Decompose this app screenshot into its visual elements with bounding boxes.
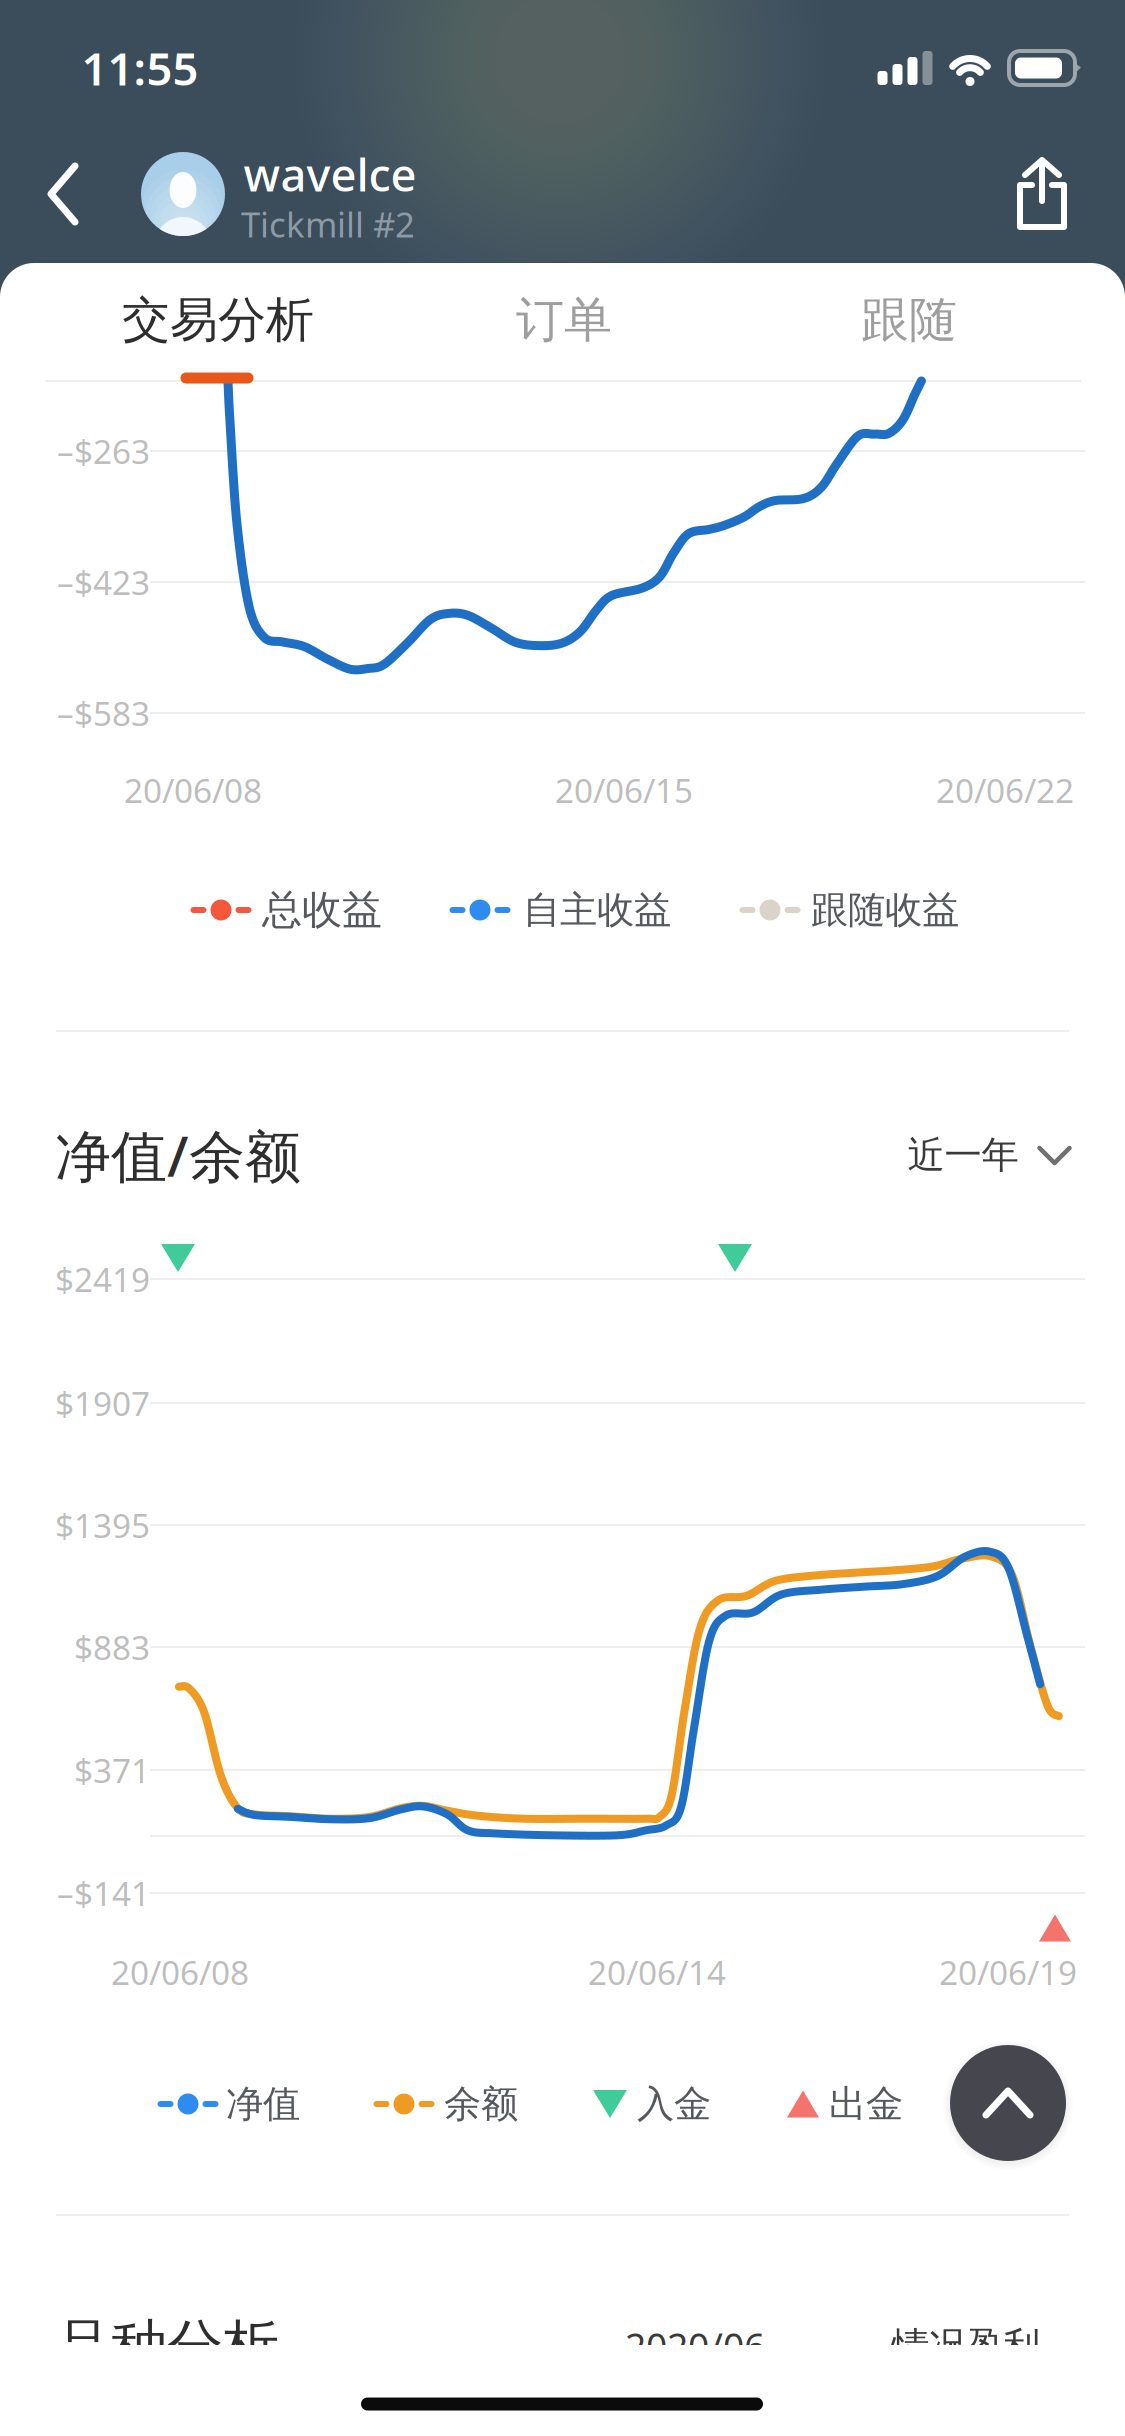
button[interactable]: 近一年 [907,1120,1072,1190]
staticText: 跟随 [861,290,957,349]
button[interactable]: 跟随 [744,261,1074,379]
staticText: 品种分析 [55,2312,279,2380]
staticText: $1395 [55,1503,150,1547]
staticText: Tickmill #2 [241,201,415,247]
button[interactable]: Scroll to top [932,2027,1084,2179]
staticText: $2419 [55,1257,150,1301]
staticText: 20/06/22 [936,768,1074,812]
staticText: 出金 [829,2081,903,2127]
staticText: 20/06/14 [588,1950,726,1994]
staticText: 20/06/08 [124,768,262,812]
staticText: 20/06/08 [111,1950,249,1994]
staticText: –$141 [57,1871,150,1915]
staticText: –$583 [57,691,150,735]
staticText: 20/06/19 [939,1950,1077,1994]
staticText: 净值/余额 [55,1118,301,1192]
staticText: 自主收益 [523,887,671,933]
staticText: 余额 [444,2081,518,2127]
button[interactable]: 交易分析 [53,261,383,379]
staticText: 订单 [516,290,612,349]
staticText: 总收益 [262,885,382,934]
staticText: 2020/06 [625,2321,765,2371]
button[interactable]: 订单 [399,261,729,379]
staticText: $1907 [55,1381,150,1425]
staticText: 近一年 [907,1132,1018,1178]
staticText: wavelce [243,144,416,204]
button[interactable]: Share [1010,155,1074,235]
staticText: 跟随收益 [811,887,959,933]
staticText: 情况盈利 [892,2323,1040,2369]
button[interactable]: Back [33,140,93,248]
staticText: 20/06/15 [555,768,693,812]
staticText: $883 [74,1625,150,1669]
staticText: –$423 [57,560,150,604]
staticText: 净值 [226,2081,300,2127]
staticText: 入金 [637,2081,711,2127]
staticText: $371 [74,1748,150,1792]
staticText: –$263 [57,429,150,473]
staticText: 11:55 [81,38,198,98]
staticText: 交易分析 [122,290,314,349]
